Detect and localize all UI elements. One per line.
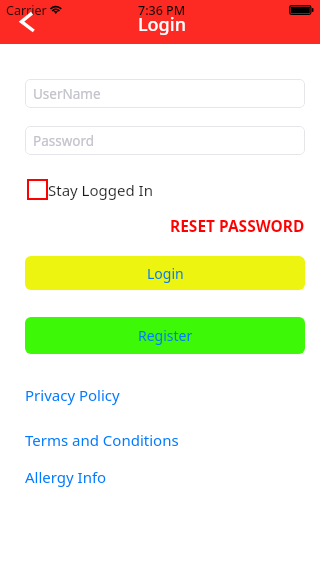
staticText: 7:36 PM: [138, 2, 186, 19]
button[interactable]: Terms and Conditions: [25, 430, 179, 450]
staticText: UserName: [33, 85, 101, 103]
button[interactable]: Back: [18, 11, 36, 33]
staticText: Terms and Conditions: [25, 430, 179, 450]
staticText: RESET PASSWORD: [170, 215, 305, 236]
button[interactable]: RESET PASSWORD: [170, 215, 305, 236]
staticText: Register: [138, 326, 193, 345]
staticText: Login: [147, 264, 184, 283]
staticText: Password: [33, 132, 95, 150]
button[interactable]: Register: [25, 317, 305, 354]
button[interactable]: Privacy Policy: [25, 385, 120, 405]
staticText: Carrier: [6, 2, 47, 19]
staticText: Allergy Info: [25, 467, 107, 487]
staticText: Stay Logged In: [48, 180, 153, 200]
staticText: Privacy Policy: [25, 385, 120, 405]
button[interactable]: Stay Logged In: [27, 179, 153, 200]
button[interactable]: Password: [25, 126, 305, 155]
button[interactable]: UserName: [25, 79, 305, 108]
button[interactable]: Allergy Info: [25, 467, 107, 487]
button[interactable]: Login: [25, 256, 305, 290]
staticText: Login: [138, 12, 186, 37]
